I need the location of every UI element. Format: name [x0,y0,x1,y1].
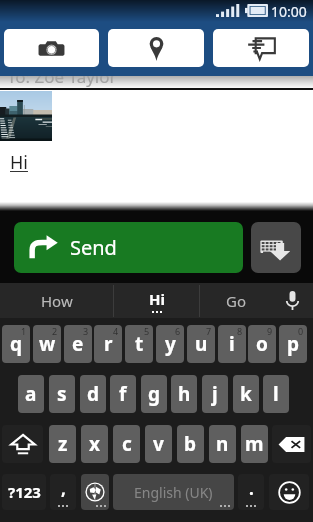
staticText: 6 [175,325,181,337]
staticText: 9 [267,325,273,337]
button[interactable]: z [49,425,76,463]
staticText: n [216,431,229,457]
staticText: Hi [149,289,165,309]
staticText: j [212,381,218,407]
staticText: ?123 [8,482,41,502]
button[interactable]: Shift [2,425,43,463]
staticText: b [184,431,197,457]
button[interactable]: Go [200,283,272,318]
button[interactable]: Hi [114,283,199,318]
button[interactable]: Voice input [272,283,313,318]
button[interactable]: m [241,425,268,463]
staticText: s [57,381,67,407]
staticText: Go [226,291,246,311]
button[interactable]: h [171,375,197,413]
button[interactable]: Comma [50,474,76,510]
staticText: How [41,291,73,311]
button[interactable]: p [279,325,307,363]
button[interactable]: u [187,325,215,363]
button[interactable]: Share location [108,29,204,67]
button[interactable]: Change language [81,474,109,510]
staticText: a [25,381,37,407]
button[interactable]: Space [113,474,234,510]
button[interactable]: f [110,375,136,413]
staticText: 2 [52,325,58,337]
staticText: t [135,331,144,357]
button[interactable]: Symbols [2,474,46,510]
button[interactable]: r [94,325,122,363]
staticText: w [39,331,56,357]
button[interactable]: q [2,325,30,363]
button[interactable]: s [49,375,75,413]
button[interactable]: l [263,375,289,413]
button[interactable]: j [202,375,228,413]
staticText: 7 [206,325,212,337]
staticText: z [58,431,68,457]
staticText: u [195,331,208,357]
staticText: . [249,477,254,500]
button[interactable]: x [81,425,108,463]
staticText: m [245,431,264,457]
button[interactable]: Emoji [269,474,309,510]
staticText: 8 [237,325,243,337]
staticText: 1 [21,325,27,337]
staticText: e [72,331,84,357]
button[interactable]: n [209,425,236,463]
button[interactable]: Period [238,474,264,510]
button[interactable]: How [0,283,113,318]
staticText: 0 [298,325,304,337]
button[interactable]: c [113,425,140,463]
staticText: 4 [113,325,119,337]
staticText: 10:00 [271,2,307,21]
staticText: q [10,331,23,357]
staticText: v [153,431,164,457]
staticText: y [165,331,176,357]
staticText: x [89,431,100,457]
staticText: c [122,431,132,457]
button[interactable]: y [156,325,184,363]
staticText: Send [70,234,117,261]
staticText: i [229,331,235,357]
button[interactable]: o [248,325,276,363]
staticText: 3 [83,325,89,337]
button[interactable]: Quick message [213,29,309,67]
staticText: k [240,381,252,407]
button[interactable]: d [80,375,106,413]
button[interactable]: i [218,325,246,363]
button[interactable]: k [233,375,259,413]
button[interactable]: Take photo [4,29,99,67]
button[interactable]: v [145,425,172,463]
staticText: o [256,331,268,357]
staticText: r [104,331,113,357]
button[interactable]: b [177,425,204,463]
staticText: , [61,477,66,500]
staticText: f [119,381,127,407]
button[interactable]: w [33,325,61,363]
staticText: p [287,331,300,357]
button[interactable]: e [64,325,92,363]
button[interactable]: Send [14,222,243,273]
button[interactable]: a [18,375,44,413]
button[interactable]: Hide keyboard [251,222,301,273]
staticText: d [87,381,100,407]
button[interactable]: g [141,375,167,413]
staticText: Hi [10,150,28,175]
staticText: 5 [144,325,150,337]
staticText: l [273,381,279,407]
staticText: g [148,381,161,407]
button[interactable]: Backspace [272,425,311,463]
staticText: English (UK) [134,483,213,502]
button[interactable]: t [125,325,153,363]
staticText: h [178,381,191,407]
staticText: To: Zoe Taylor [7,65,117,88]
